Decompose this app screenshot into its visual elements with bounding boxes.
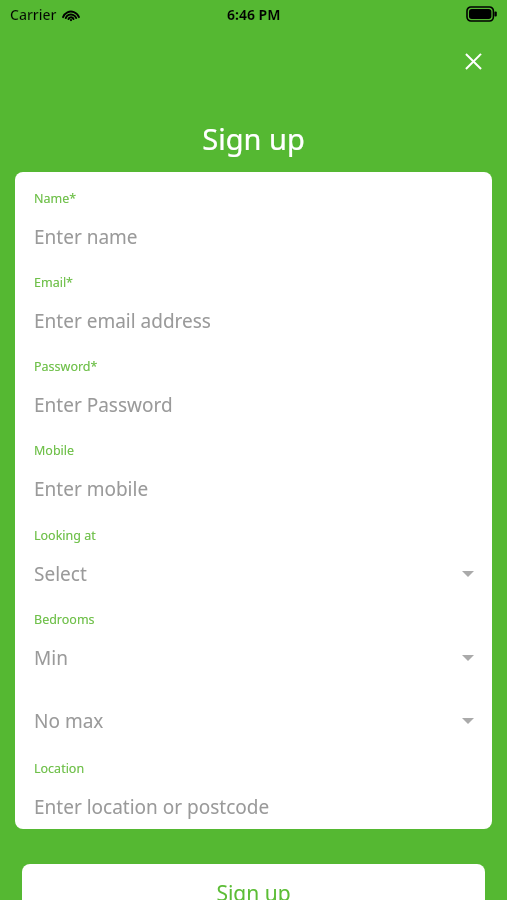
staticText: Enter email address	[34, 308, 211, 334]
button[interactable]: Location	[15, 760, 492, 829]
staticText: Name*	[34, 190, 77, 207]
staticText: Bedrooms	[34, 611, 95, 628]
button[interactable]: Sign up	[22, 864, 485, 900]
staticText: Enter mobile	[34, 476, 149, 502]
staticText: Sign up	[202, 119, 305, 158]
button[interactable]: Password*	[15, 358, 492, 436]
staticText: Looking at	[34, 527, 96, 544]
staticText: Select	[34, 561, 87, 587]
staticText: Mobile	[34, 442, 75, 459]
staticText: Enter location or postcode	[34, 794, 270, 820]
staticText: Email*	[34, 274, 73, 291]
button[interactable]: No max	[15, 695, 492, 757]
staticText: No max	[34, 708, 104, 734]
button[interactable]: Bedrooms	[15, 611, 492, 689]
staticText: 6:46 PM	[227, 5, 281, 24]
staticText: Min	[34, 645, 68, 671]
button[interactable]: Email*	[15, 274, 492, 352]
staticText: Enter name	[34, 224, 138, 250]
button[interactable]: Looking at	[15, 527, 492, 605]
staticText: Location	[34, 760, 85, 777]
staticText: Enter Password	[34, 392, 173, 418]
staticText: Sign up	[216, 879, 291, 900]
button[interactable]: Close	[452, 40, 494, 82]
staticText: Carrier	[10, 5, 57, 24]
button[interactable]: Name*	[15, 190, 492, 268]
button[interactable]: Mobile	[15, 442, 492, 520]
staticText: Password*	[34, 358, 98, 375]
